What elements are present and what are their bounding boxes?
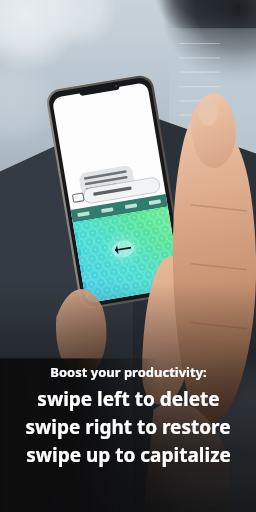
staticText: swipe up to capitalize xyxy=(26,442,231,468)
staticText: swipe right to restore xyxy=(25,414,231,440)
button[interactable]: Promotional caption xyxy=(0,363,256,468)
staticText: swipe left to delete xyxy=(37,386,220,412)
staticText: Boost your productivity: xyxy=(50,363,207,381)
